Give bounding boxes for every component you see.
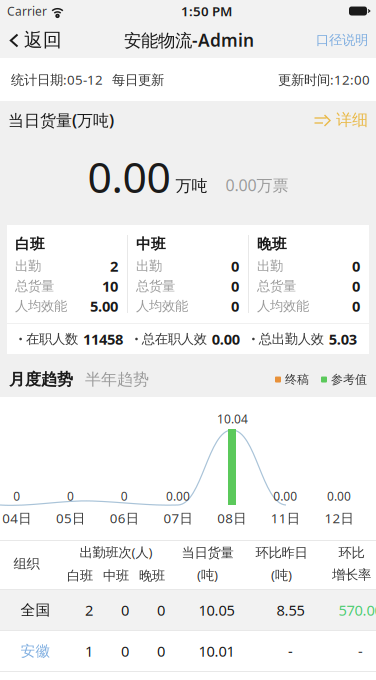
staticText: 增长率: [332, 567, 371, 583]
staticText: 晚班: [139, 568, 165, 584]
staticText: 万吨: [175, 176, 207, 196]
staticText: 0: [352, 276, 360, 296]
staticText: 0: [13, 488, 20, 504]
staticText: 0.00: [273, 488, 297, 504]
staticText: 0.00万票: [225, 174, 288, 196]
staticText: 0: [157, 641, 165, 661]
staticText: 0: [231, 296, 239, 316]
staticText: 总出勤人效: [259, 331, 324, 347]
button[interactable]: 全国: [0, 590, 376, 630]
staticText: 0.00: [327, 488, 351, 504]
staticText: 出勤: [136, 258, 162, 274]
staticText: 人均效能: [15, 298, 67, 314]
staticText: 出勤: [257, 258, 283, 274]
staticText: 口径说明: [316, 32, 368, 48]
staticText: 0.00: [166, 488, 190, 504]
staticText: 终稿: [285, 372, 309, 387]
staticText: 全国: [20, 601, 50, 619]
staticText: 当日货量(万吨): [8, 109, 114, 131]
staticText: 1: [85, 641, 93, 661]
staticText: 半年趋势: [85, 370, 149, 389]
button[interactable]: 返回: [0, 22, 70, 58]
staticText: 1:50 PM: [181, 2, 232, 20]
staticText: 10.01: [198, 641, 234, 661]
button[interactable]: 月度趋势: [9, 363, 73, 396]
staticText: 人均效能: [257, 298, 309, 314]
staticText: 0.00: [212, 329, 240, 349]
staticText: 2: [110, 256, 118, 276]
staticText: 当日货量: [181, 545, 233, 561]
staticText: 总在职人效: [142, 331, 207, 347]
staticText: 统计日期:05-12 每日更新: [11, 71, 164, 88]
staticText: 0: [67, 488, 74, 504]
staticText: 04日: [2, 509, 31, 527]
staticText: 总货量: [257, 278, 296, 294]
staticText: 0: [121, 641, 129, 661]
staticText: 0: [352, 296, 360, 316]
staticText: -: [288, 641, 293, 661]
staticText: 组织: [13, 556, 39, 572]
staticText: 参考值: [331, 372, 367, 387]
staticText: 5.00: [90, 296, 118, 316]
staticText: 详细: [336, 110, 368, 130]
staticText: 0: [231, 256, 239, 276]
staticText: 08日: [217, 509, 246, 527]
staticText: 8.55: [276, 600, 304, 620]
staticText: 07日: [163, 509, 192, 527]
staticText: 在职人数: [26, 331, 78, 347]
staticText: 环比: [338, 545, 364, 561]
staticText: 0: [121, 600, 129, 620]
staticText: 中班: [103, 568, 129, 584]
staticText: 5.03: [329, 329, 357, 349]
staticText: 06日: [110, 509, 139, 527]
staticText: (吨): [197, 566, 218, 584]
staticText: 环比昨日: [255, 545, 307, 561]
staticText: 中班: [136, 235, 166, 253]
staticText: 10: [102, 276, 118, 296]
staticText: 白班: [15, 235, 45, 253]
button[interactable]: 口径说明: [308, 22, 376, 58]
staticText: 10.05: [198, 600, 234, 620]
staticText: 2: [85, 600, 93, 620]
staticText: 月度趋势: [9, 370, 73, 389]
staticText: 白班: [67, 568, 93, 584]
staticText: 0: [231, 276, 239, 296]
staticText: 更新时间:12:00: [278, 71, 370, 88]
staticText: 0: [352, 256, 360, 276]
staticText: (吨): [271, 566, 292, 584]
staticText: 总货量: [15, 278, 54, 294]
staticText: Carrier: [7, 3, 47, 19]
staticText: 总货量: [136, 278, 175, 294]
staticText: 人均效能: [136, 298, 188, 314]
staticText: 0: [121, 488, 128, 504]
staticText: 返回: [24, 28, 62, 51]
staticText: 10.04: [217, 411, 248, 427]
staticText: 出勤: [15, 258, 41, 274]
staticText: 晚班: [257, 235, 287, 253]
staticText: 安徽: [20, 642, 50, 660]
button[interactable]: 安徽: [0, 631, 376, 671]
staticText: 0.00: [87, 148, 170, 205]
staticText: 出勤班次(人): [79, 543, 152, 561]
staticText: 570.00: [338, 600, 376, 620]
staticText: 12日: [325, 509, 354, 527]
staticText: -: [358, 641, 363, 661]
staticText: 11日: [271, 509, 300, 527]
staticText: 0: [157, 600, 165, 620]
staticText: 11458: [83, 329, 123, 349]
button[interactable]: 详细: [314, 104, 368, 136]
staticText: 05日: [56, 509, 85, 527]
button[interactable]: 半年趋势: [73, 363, 149, 396]
staticText: 安能物流-Admin: [124, 28, 254, 51]
